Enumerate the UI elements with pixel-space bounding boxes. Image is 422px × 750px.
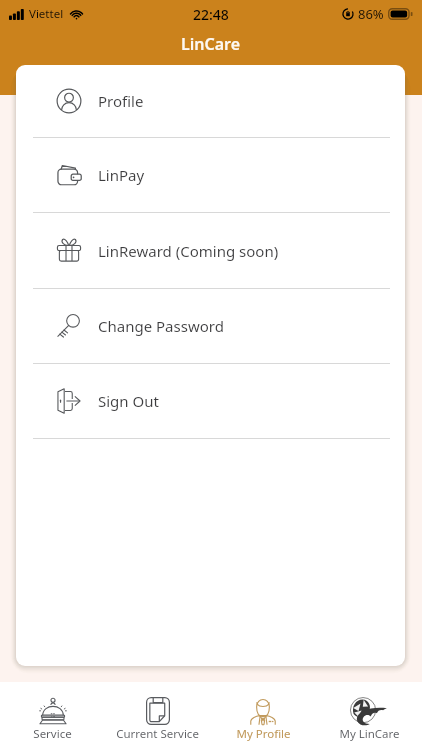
staticText: My LinCare <box>339 726 400 742</box>
button[interactable]: LinReward (Coming soon) <box>16 213 405 288</box>
staticText: Profile <box>98 91 144 111</box>
button[interactable]: Sign Out <box>16 364 405 438</box>
staticText: 86% <box>358 5 384 23</box>
button[interactable]: Service <box>0 682 105 750</box>
button[interactable]: My Profile <box>210 682 316 750</box>
staticText: LinCare <box>181 33 241 55</box>
staticText: LinReward (Coming soon) <box>98 241 279 261</box>
staticText: Current Service <box>116 726 199 742</box>
staticText: LinPay <box>98 165 145 185</box>
button[interactable]: Current Service <box>105 682 210 750</box>
staticText: Viettel <box>29 6 64 22</box>
staticText: Service <box>33 726 72 742</box>
staticText: 22:48 <box>193 5 229 24</box>
button[interactable]: My LinCare <box>316 682 422 750</box>
staticText: My Profile <box>236 726 291 742</box>
staticText: Change Password <box>98 316 224 336</box>
button[interactable]: Profile <box>16 65 405 137</box>
staticText: Sign Out <box>98 391 159 411</box>
button[interactable]: LinPay <box>16 138 405 212</box>
button[interactable]: Change Password <box>16 289 405 363</box>
